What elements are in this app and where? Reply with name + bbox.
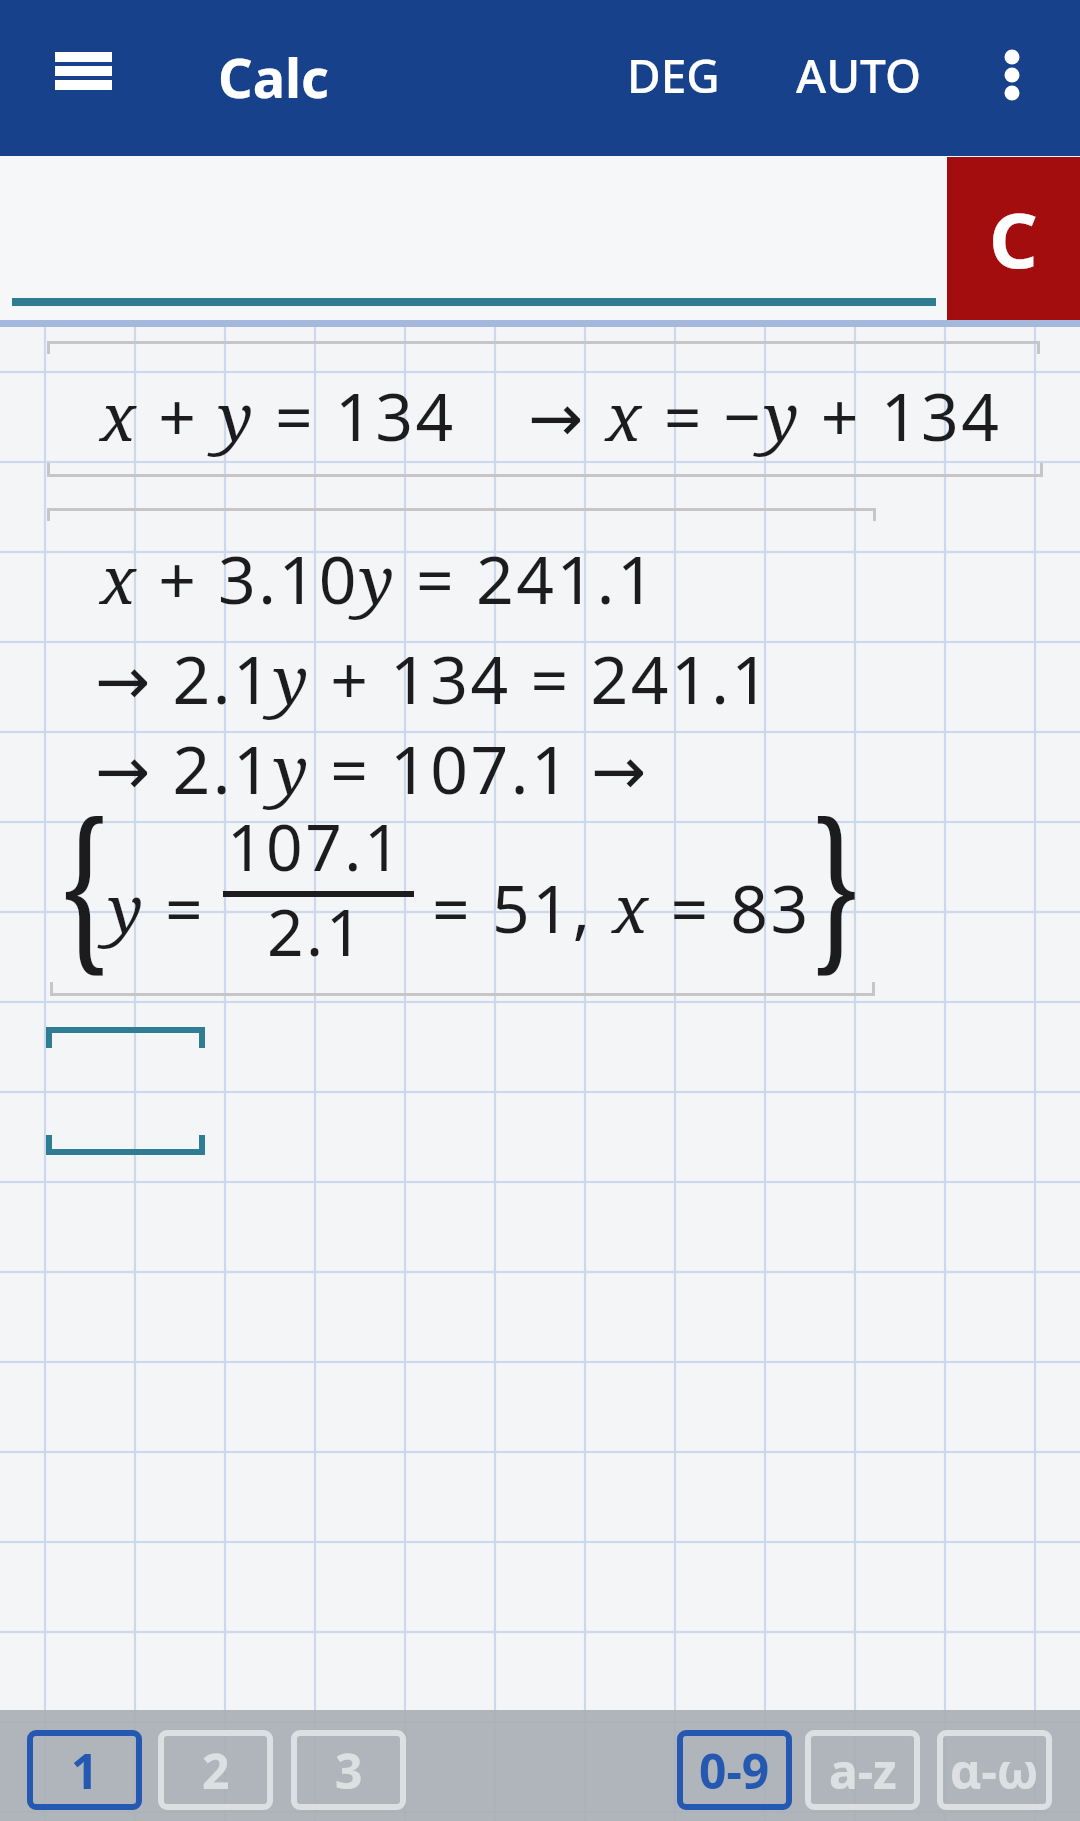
staticText: C [989,187,1038,291]
button[interactable]: 1 [27,1730,142,1810]
button[interactable] [975,27,1050,127]
button[interactable]: 0-9 [677,1730,792,1810]
staticText: α-ω [950,1738,1039,1803]
staticText: y = [108,862,206,952]
button[interactable]: AUTO [789,30,929,120]
staticText: 2 [202,1738,230,1803]
staticText: x + 3.10y = 241.1 [100,533,658,623]
staticText: a-z [829,1738,897,1803]
staticText: DEG [627,44,720,107]
staticText: { [60,760,109,1004]
button[interactable]: α-ω [937,1730,1052,1810]
staticText: → 2.1y = 107.1 → [95,723,649,813]
button[interactable]: a-z [805,1730,920,1810]
staticText: 2.1 [267,888,365,975]
staticText: → 2.1y + 134 = 241.1 [95,633,772,723]
staticText: } [812,760,861,1004]
button[interactable]: 3 [291,1730,406,1810]
staticText: → x = −y + 134 [528,370,1002,460]
button[interactable] [30,27,130,127]
staticText: x + y = 134 [100,370,456,460]
staticText: = 51, x = 83 [432,862,811,952]
staticText: 1 [71,1738,99,1803]
staticText: 0-9 [699,1738,770,1803]
button[interactable]: C [947,157,1080,320]
button[interactable]: 2 [158,1730,273,1810]
staticText: 107.1 [227,803,404,890]
staticText: Calc [218,40,329,114]
staticText: AUTO [796,44,922,107]
button[interactable]: DEG [603,30,743,120]
staticText: 3 [335,1738,363,1803]
